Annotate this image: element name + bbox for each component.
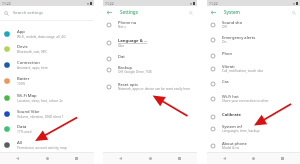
button[interactable]: Phone nu: [103, 18, 197, 31]
button[interactable]: Recents: [72, 154, 81, 163]
button[interactable]: Vibrati: [207, 62, 300, 75]
staticText: Volume, vibration, DND silent 1: [17, 115, 64, 119]
staticText: 11:22: [209, 1, 218, 6]
button[interactable]: System inf: [207, 122, 300, 135]
staticText: Reset opts: [118, 82, 139, 87]
staticText: 100%: [17, 82, 26, 86]
button[interactable]: Devic: [0, 42, 94, 55]
staticText: Batter: [17, 76, 30, 82]
button[interactable]: Backup: [103, 63, 197, 76]
staticText: Languages, time, backup: [222, 129, 260, 133]
button[interactable]: Back: [220, 154, 229, 163]
staticText: Wi-Fi, mobile, data usage, all, 4G: [17, 35, 66, 39]
staticText: On: [222, 40, 227, 44]
button[interactable]: About phone: [207, 139, 300, 152]
staticText: Off: [222, 25, 227, 29]
staticText: Sound Vibe: [17, 109, 40, 115]
staticText: About phone: [222, 141, 247, 146]
staticText: Calibrate: [222, 112, 241, 118]
staticText: Call, notification, touch vibe: [222, 69, 264, 73]
button[interactable]: Search: [289, 8, 298, 17]
button[interactable]: Emergency alerts: [207, 33, 300, 46]
staticText: Phon: [222, 51, 232, 56]
staticText: 11:22: [105, 1, 114, 6]
staticText: Location, sleep, font, colour 2x: [17, 99, 63, 103]
button[interactable]: Sound Vibe: [0, 107, 94, 120]
staticText: Language & ...: [118, 38, 148, 44]
staticText: Cas: [222, 79, 229, 84]
button[interactable]: Dat: [103, 54, 197, 63]
button[interactable]: Wi-Fi Map: [0, 91, 94, 104]
button[interactable]: Reset opts: [103, 80, 197, 93]
button[interactable]: Data: [0, 122, 94, 135]
button[interactable]: Recents: [175, 154, 184, 163]
staticText: System inf: [222, 124, 242, 129]
button[interactable]: Search: [186, 8, 195, 17]
button[interactable]: Cas: [207, 79, 300, 88]
staticText: Dat: [118, 54, 125, 59]
staticText: Phone nu: [118, 20, 137, 25]
button[interactable]: Back: [13, 154, 22, 163]
button[interactable]: Batter: [0, 74, 94, 87]
button[interactable]: All: [0, 138, 94, 151]
staticText: Emergency alerts: [222, 35, 256, 40]
button[interactable]: Calibrate: [207, 112, 300, 121]
staticText: Data: [17, 124, 27, 130]
button[interactable]: Connection: [0, 58, 94, 71]
staticText: Connection: [17, 60, 40, 66]
staticText: Wi-Fi Map: [17, 93, 37, 99]
staticText: Sound sho: [222, 20, 243, 25]
staticText: Network, apps or device can be reset eas…: [118, 87, 191, 91]
staticText: Bluetooth, cast, NFC: [17, 50, 48, 54]
button[interactable]: App: [0, 27, 94, 40]
staticText: Settings: [120, 9, 138, 15]
staticText: 11:22: [2, 1, 11, 6]
staticText: Vibrati: [222, 64, 235, 69]
staticText: App: [17, 29, 25, 35]
staticText: Model & no: [222, 146, 240, 150]
button[interactable]: Search settings: [0, 6, 94, 20]
button[interactable]: Home: [249, 154, 258, 163]
staticText: Backup: [118, 65, 133, 70]
staticText: All: [17, 140, 23, 146]
staticText: Search settings: [13, 10, 43, 16]
button[interactable]: Recents: [278, 154, 287, 163]
staticText: System: [224, 9, 240, 15]
staticText: Not s: [118, 25, 126, 29]
button[interactable]: Back: [207, 6, 220, 18]
button[interactable]: Wi-Fi hot: [207, 92, 300, 105]
staticText: Gbo: [118, 44, 125, 48]
staticText: Devic: [17, 44, 28, 50]
button[interactable]: Home: [146, 154, 155, 163]
staticText: Wi-Fi hot: [222, 94, 239, 99]
button[interactable]: Phon: [207, 51, 300, 60]
staticText: 17% used: [17, 130, 32, 134]
button[interactable]: Language & ...: [103, 36, 197, 49]
staticText: Permission, account activity, map: [17, 146, 67, 150]
button[interactable]: Sound sho: [207, 18, 300, 31]
button[interactable]: Back: [116, 154, 125, 163]
button[interactable]: Back: [103, 6, 116, 18]
staticText: Off, Google Drive, 1GB: [118, 70, 152, 74]
staticText: Assistant, apps, here: [17, 66, 48, 70]
staticText: Share your connection to other: [222, 99, 269, 103]
button[interactable]: Home: [43, 154, 52, 163]
